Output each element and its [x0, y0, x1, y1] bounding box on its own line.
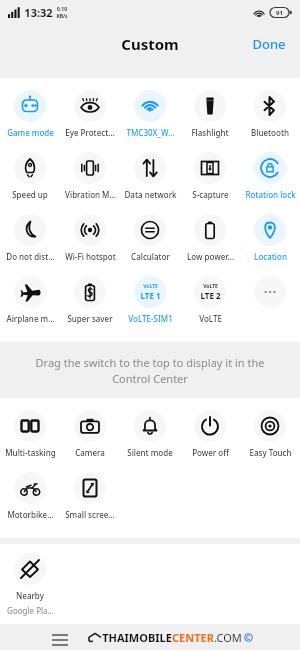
button[interactable]: Multi-tasking: [0, 406, 60, 458]
button[interactable]: Airplane m…: [0, 272, 60, 324]
other: VoLTE-SIM1: [134, 276, 166, 308]
button[interactable]: Super saver: [60, 272, 120, 324]
other: VoLTE: [194, 276, 226, 308]
staticText: Google Pla…: [7, 605, 54, 616]
staticText: Easy Touch: [249, 447, 292, 458]
staticText: Calculator: [131, 251, 170, 262]
button[interactable]: VoLTE: [180, 272, 240, 324]
button[interactable]: S-capture: [180, 148, 240, 200]
button[interactable]: Motorbike…: [0, 468, 60, 520]
button[interactable]: More: [240, 272, 300, 324]
other: Power off: [194, 410, 226, 442]
button[interactable]: Silent mode: [120, 406, 180, 458]
other: Multi-tasking: [14, 410, 46, 442]
other: Easy Touch: [254, 410, 286, 442]
staticText: LTE 1: [140, 290, 161, 301]
staticText: 13:32: [24, 5, 53, 20]
button[interactable]: Game mode: [0, 86, 60, 138]
other: More: [254, 276, 286, 308]
button[interactable]: Rotation lock: [240, 148, 300, 200]
staticText: Location: [254, 251, 287, 262]
staticText: VoLTE: [143, 283, 158, 290]
staticText: Game mode: [7, 127, 54, 138]
staticText: VoLTE: [203, 283, 218, 290]
staticText: Do not dist…: [6, 251, 55, 262]
other: Camera: [74, 410, 106, 442]
staticText: Vibration M…: [65, 189, 116, 200]
staticText: THAIMOBILE: [102, 630, 172, 645]
button[interactable]: Low power…: [180, 210, 240, 262]
button[interactable]: Bluetooth: [240, 86, 300, 138]
other: Vibration M…: [74, 152, 106, 184]
other: Data network: [134, 152, 166, 184]
other: Small scree…: [74, 472, 106, 504]
button[interactable]: Camera: [60, 406, 120, 458]
staticText: Motorbike…: [7, 509, 54, 520]
staticText: Done: [252, 35, 286, 53]
staticText: Flashlight: [191, 127, 229, 138]
button[interactable]: Location: [240, 210, 300, 262]
button[interactable]: Vibration M…: [60, 148, 120, 200]
button[interactable]: Speed up: [0, 148, 60, 200]
other: Eye Protect…: [74, 90, 106, 122]
staticText: VoLTE-SIM1: [128, 313, 173, 324]
button[interactable]: Menu: [44, 624, 76, 650]
staticText: 91: [276, 9, 283, 17]
other: Low power…: [194, 214, 226, 246]
other: Airplane m…: [14, 276, 46, 308]
other: Game mode: [14, 90, 46, 122]
other: Super saver: [74, 276, 106, 308]
staticText: Multi-tasking: [5, 447, 56, 458]
staticText: Airplane m…: [6, 313, 55, 324]
button[interactable]: Power off: [180, 406, 240, 458]
button[interactable]: Do not dist…: [0, 210, 60, 262]
button[interactable]: Wi-Fi hotspot: [60, 210, 120, 262]
other: Flashlight: [194, 90, 226, 122]
staticText: .COM: [214, 630, 242, 645]
other: Do not dist…: [14, 214, 46, 246]
other: Bluetooth: [254, 90, 286, 122]
staticText: Small scree…: [65, 509, 115, 520]
staticText: Rotation lock: [245, 189, 296, 200]
staticText: Super saver: [67, 313, 113, 324]
staticText: Bluetooth: [251, 127, 289, 138]
other: Calculator: [134, 214, 166, 246]
staticText: Camera: [75, 447, 105, 458]
staticText: Power off: [192, 447, 229, 458]
staticText: LTE 2: [200, 290, 221, 301]
other: Motorbike…: [14, 472, 46, 504]
staticText: Drag the switch to the top to display it…: [22, 355, 278, 386]
button[interactable]: Data network: [120, 148, 180, 200]
other: Nearby: [14, 553, 46, 585]
staticText: Nearby: [16, 590, 44, 601]
staticText: KB/s: [56, 13, 68, 20]
button[interactable]: Done: [238, 27, 300, 61]
staticText: Low power…: [187, 251, 234, 262]
other: S-capture: [194, 152, 226, 184]
button[interactable]: VoLTE-SIM1: [120, 272, 180, 324]
other: Rotation lock: [254, 152, 286, 184]
other: Speed up: [14, 152, 46, 184]
button[interactable]: TMC30X_W…: [120, 86, 180, 138]
staticText: Silent mode: [127, 447, 173, 458]
other: Location: [254, 214, 286, 246]
staticText: Speed up: [12, 189, 48, 200]
staticText: Data network: [124, 189, 177, 200]
button[interactable]: Nearby: [0, 553, 60, 616]
button[interactable]: Small scree…: [60, 468, 120, 520]
button[interactable]: Easy Touch: [240, 406, 300, 458]
other: Wi-Fi hotspot: [74, 214, 106, 246]
button[interactable]: Calculator: [120, 210, 180, 262]
button[interactable]: Flashlight: [180, 86, 240, 138]
other: Silent mode: [134, 410, 166, 442]
staticText: Wi-Fi hotspot: [65, 251, 116, 262]
staticText: Eye Protect…: [65, 127, 115, 138]
staticText: 0.10: [57, 6, 67, 13]
staticText: Custom: [121, 34, 179, 54]
staticText: S-capture: [192, 189, 229, 200]
staticText: TMC30X_W…: [126, 127, 175, 138]
other: TMC30X_W…: [134, 90, 166, 122]
button[interactable]: Eye Protect…: [60, 86, 120, 138]
staticText: VoLTE: [199, 313, 222, 324]
staticText: CENTER: [172, 630, 214, 645]
